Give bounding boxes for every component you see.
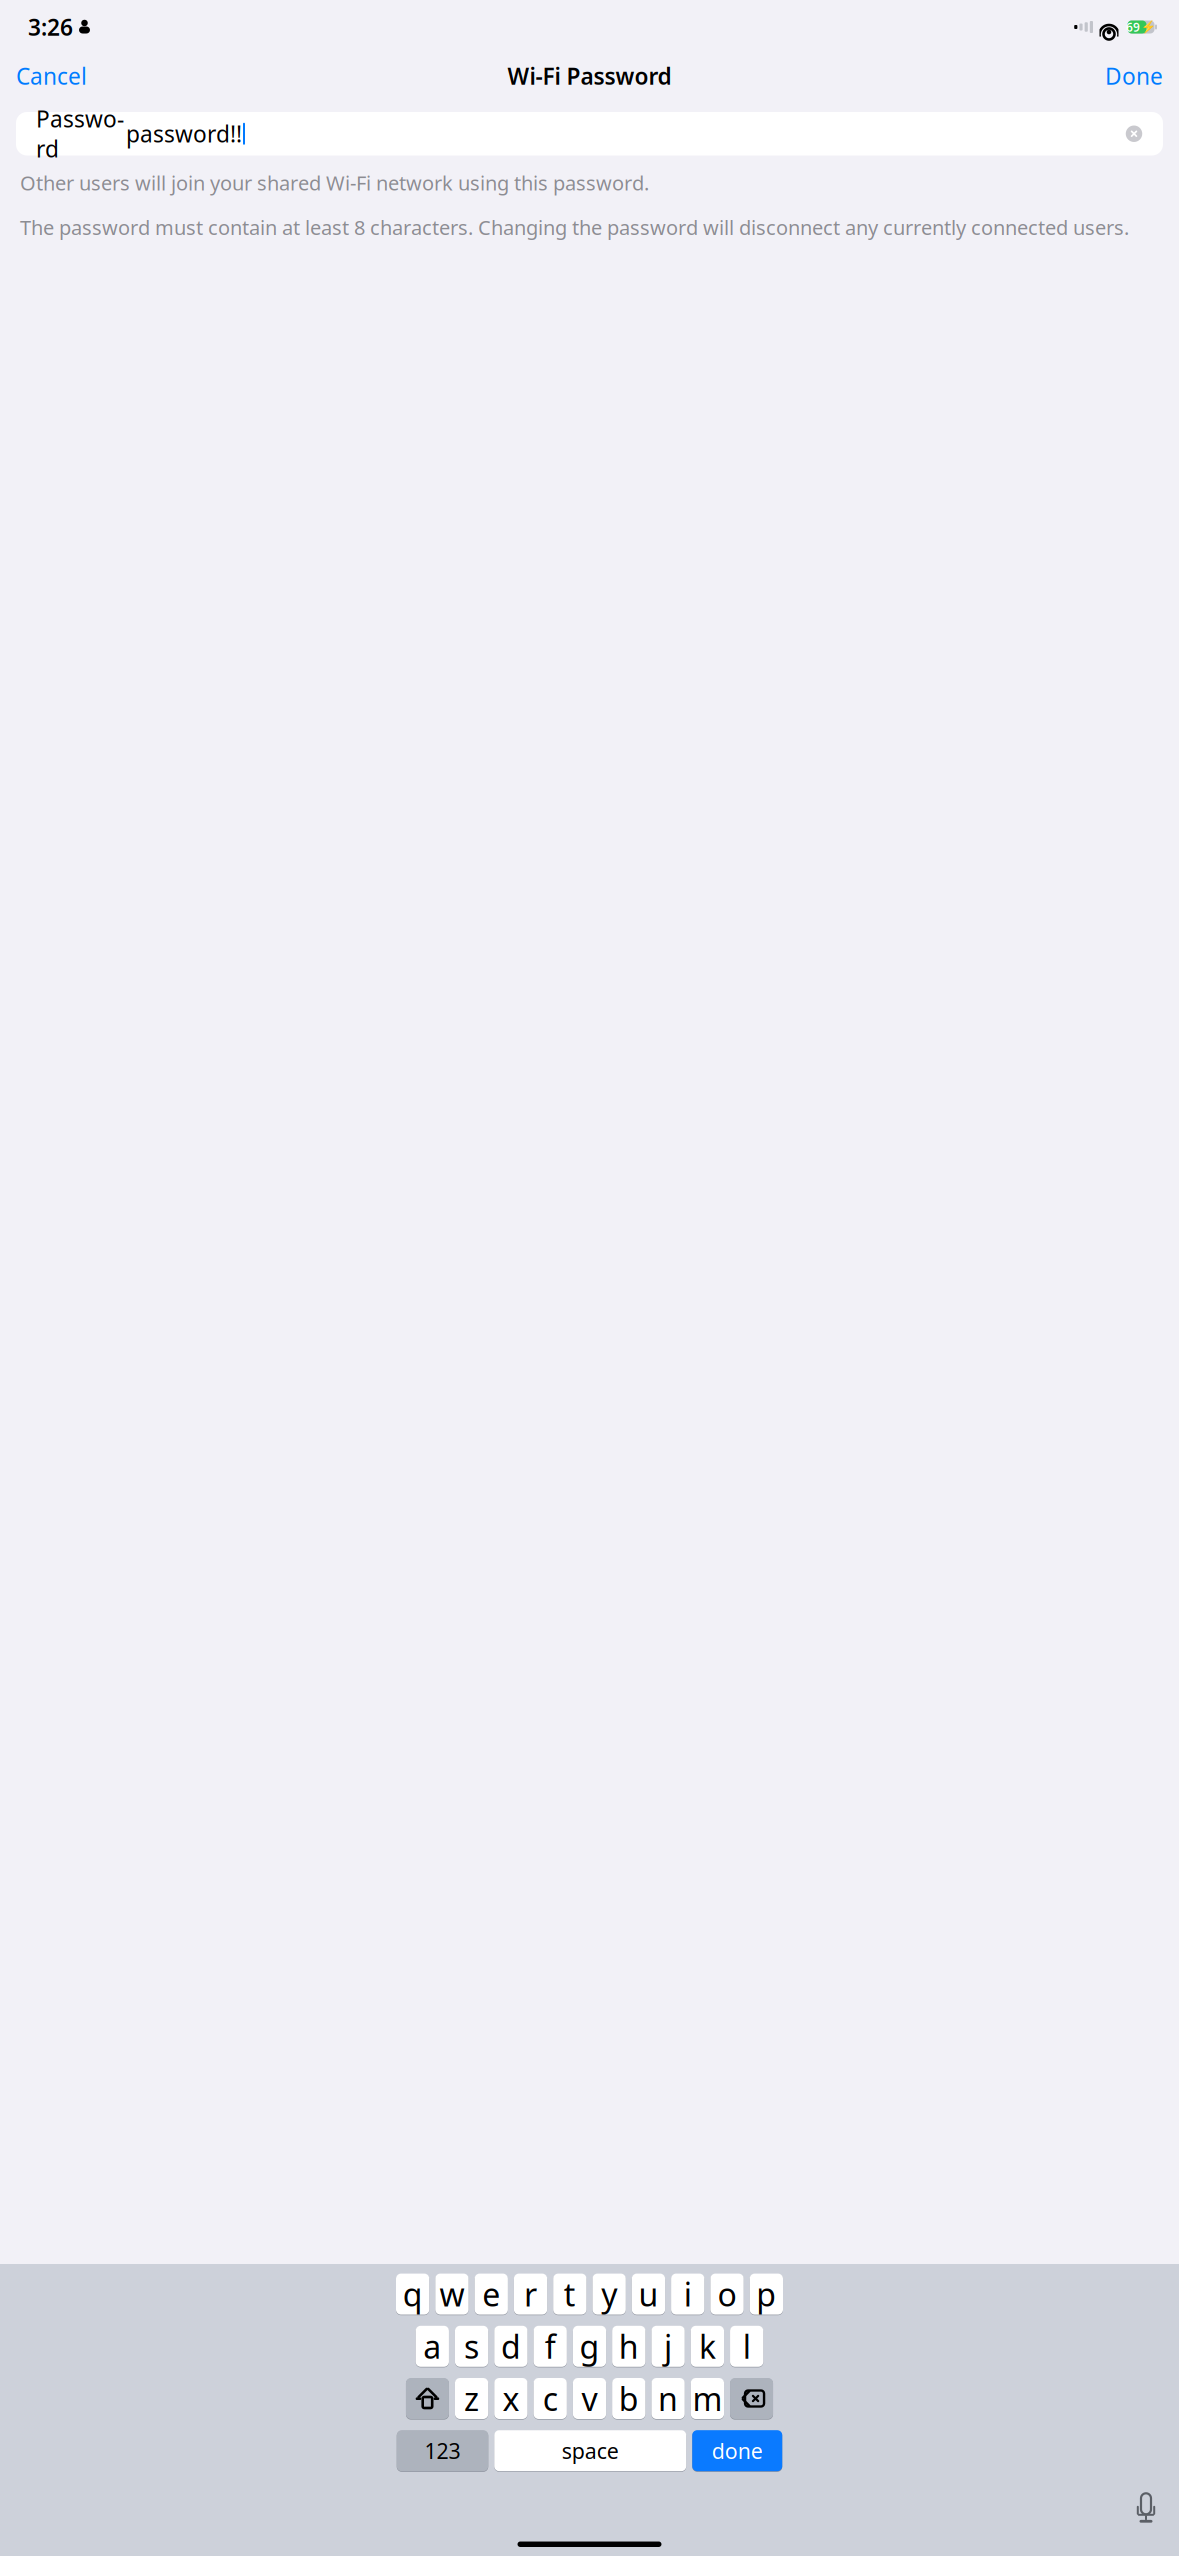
staticText: 3:26 (28, 12, 73, 42)
button[interactable]: Dictation (1131, 2490, 1179, 2526)
staticText: Wi‑Fi Password (507, 61, 671, 91)
button[interactable]: y (592, 2273, 626, 2315)
button[interactable]: Done (1095, 53, 1173, 99)
staticText: o (718, 2273, 737, 2315)
staticText: Cancel (16, 61, 87, 91)
button[interactable]: u (632, 2273, 665, 2315)
staticText: k (699, 2325, 716, 2368)
staticText: l (743, 2325, 751, 2368)
staticText: q (403, 2273, 423, 2315)
staticText: e (482, 2273, 500, 2315)
staticText: c (543, 2377, 558, 2420)
staticText: The password must contain at least 8 cha… (20, 214, 1129, 241)
staticText: w (439, 2273, 464, 2315)
staticText: Other users will join your shared Wi‑Fi … (20, 169, 649, 196)
staticText: u (638, 2273, 658, 2315)
staticText: p (756, 2273, 776, 2315)
staticText: ⚡ (1141, 20, 1156, 34)
staticText: 69 (1126, 19, 1140, 35)
button[interactable]: o (710, 2273, 744, 2315)
button[interactable]: Delete (730, 2377, 773, 2420)
button[interactable]: x (494, 2377, 527, 2420)
staticText: y (601, 2273, 617, 2315)
staticText: f (545, 2325, 556, 2368)
button[interactable]: w (435, 2273, 469, 2315)
staticText: a (423, 2325, 441, 2368)
staticText: d (501, 2325, 521, 2368)
button[interactable]: Clear text (1119, 119, 1149, 149)
staticText: m (692, 2377, 722, 2420)
button[interactable]: f (533, 2325, 567, 2367)
button[interactable]: t (553, 2273, 586, 2315)
button[interactable]: 123 (397, 2430, 488, 2472)
button[interactable]: p (750, 2273, 783, 2315)
button[interactable]: j (651, 2325, 685, 2367)
staticText: done (712, 2436, 763, 2465)
staticText: z (464, 2377, 479, 2420)
button[interactable]: s (455, 2325, 488, 2367)
button[interactable]: z (455, 2377, 488, 2420)
staticText: t (564, 2273, 576, 2315)
staticText: i (684, 2273, 692, 2315)
button[interactable]: q (396, 2273, 429, 2315)
staticText: Done (1105, 61, 1163, 91)
staticText: space (562, 2436, 619, 2465)
staticText: s (464, 2325, 479, 2368)
button[interactable]: b (612, 2377, 645, 2420)
button[interactable]: n (651, 2377, 685, 2420)
button[interactable]: m (691, 2377, 724, 2420)
button[interactable]: a (416, 2325, 449, 2367)
button[interactable]: h (612, 2325, 645, 2367)
button[interactable]: c (533, 2377, 567, 2420)
staticText: n (658, 2377, 678, 2420)
staticText: password!! (126, 119, 242, 149)
button[interactable]: i (671, 2273, 704, 2315)
staticText: j (664, 2325, 672, 2368)
staticText: h (619, 2325, 639, 2368)
button[interactable]: Cancel (6, 53, 97, 99)
button[interactable]: l (730, 2325, 763, 2367)
button[interactable]: g (573, 2325, 606, 2367)
staticText: g (579, 2325, 599, 2368)
staticText: Password (36, 104, 124, 164)
staticText: x (502, 2377, 519, 2420)
button[interactable]: k (691, 2325, 724, 2367)
staticText: v (581, 2377, 597, 2420)
button[interactable]: space (494, 2430, 686, 2472)
staticText: r (524, 2273, 537, 2315)
staticText: b (619, 2377, 639, 2420)
button[interactable]: v (573, 2377, 606, 2420)
button[interactable]: e (475, 2273, 508, 2315)
button[interactable]: Shift (406, 2377, 449, 2420)
button[interactable]: done (692, 2430, 782, 2472)
staticText: 123 (424, 2436, 460, 2465)
button[interactable]: r (514, 2273, 547, 2315)
button[interactable]: d (494, 2325, 527, 2367)
